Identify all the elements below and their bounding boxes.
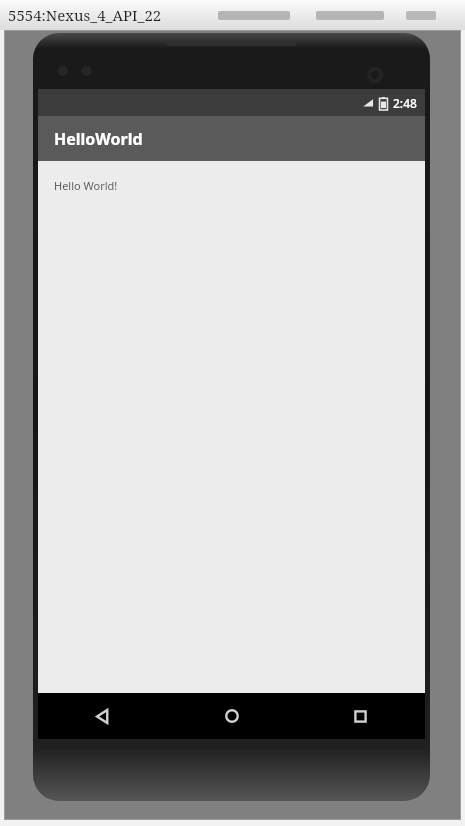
staticText: 5554:Nexus_4_API_22: [8, 5, 162, 25]
button[interactable]: Back: [38, 693, 167, 739]
button[interactable]: Home: [167, 693, 296, 739]
button[interactable]: Recent apps: [296, 693, 425, 739]
staticText: 2:48: [393, 95, 417, 111]
button[interactable]: HelloWorld: [38, 116, 425, 161]
staticText: Hello World!: [54, 178, 118, 193]
staticText: HelloWorld: [54, 128, 143, 150]
